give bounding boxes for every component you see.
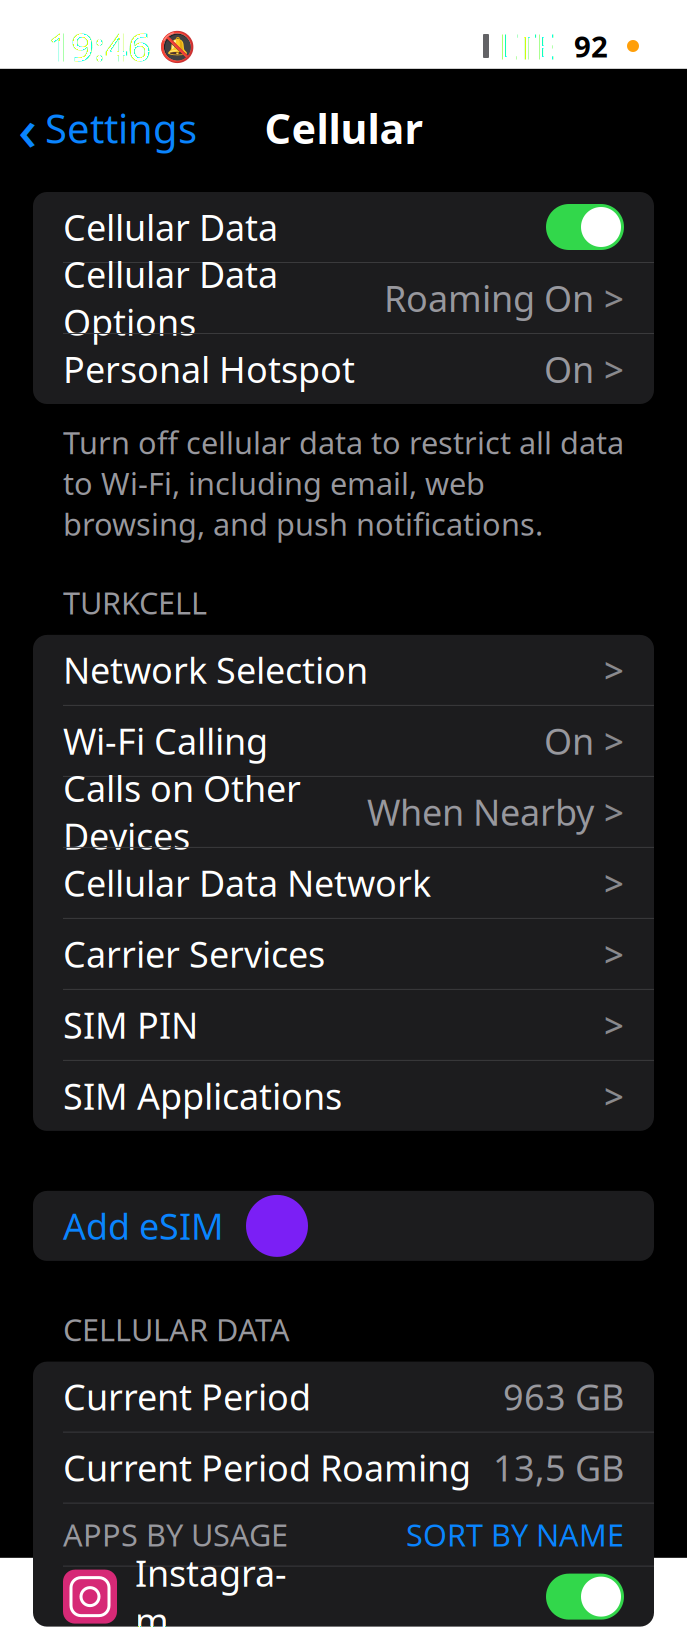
- button[interactable]: SIM PIN: [33, 990, 654, 1060]
- staticText: Personal Hotspot: [63, 345, 355, 393]
- button[interactable]: Wi-Fi Calling: [33, 706, 654, 776]
- staticText: ‹: [18, 89, 37, 167]
- button[interactable]: Cellular Data: [33, 192, 654, 262]
- button[interactable]: Network Selection: [33, 635, 654, 705]
- staticText: On: [544, 717, 594, 765]
- button[interactable]: Add eSIM: [33, 1191, 654, 1261]
- button[interactable]: Current Period Roaming: [33, 1433, 654, 1503]
- staticText: Current Period: [63, 1373, 311, 1420]
- button[interactable]: Cellular Data Network: [33, 848, 654, 918]
- staticText: Add eSIM: [63, 1202, 224, 1250]
- staticText: Network Selection: [63, 646, 368, 694]
- staticText: >: [604, 647, 624, 693]
- staticText: >: [604, 789, 624, 835]
- staticText: Turn off cellular data to restrict all d…: [63, 422, 624, 544]
- staticText: Cellular Data Network: [63, 859, 431, 907]
- staticText: LTE: [499, 23, 555, 69]
- staticText: Cellular Data Options: [63, 250, 278, 346]
- staticText: CELLULAR DATA: [63, 1309, 290, 1350]
- staticText: SIM Applications: [63, 1072, 342, 1120]
- staticText: Cellular: [264, 101, 422, 155]
- staticText: APPS BY USAGE: [63, 1514, 288, 1555]
- staticText: Cellular Data: [63, 203, 278, 251]
- staticText: SIM PIN: [63, 1001, 198, 1049]
- staticText: >: [604, 718, 624, 764]
- staticText: Current Period Roaming: [63, 1444, 471, 1491]
- button[interactable]: Current Period: [33, 1362, 654, 1432]
- staticText: Roaming On: [384, 274, 594, 322]
- staticText: Settings: [45, 101, 197, 154]
- button[interactable]: Cellular Data Options: [33, 263, 654, 333]
- button[interactable]: SIM Applications: [33, 1061, 654, 1131]
- button[interactable]: Carrier Services: [33, 919, 654, 989]
- staticText: 19:46: [48, 19, 151, 72]
- staticText: Instagram: [135, 1549, 287, 1627]
- staticText: >: [604, 275, 624, 321]
- staticText: >: [604, 1073, 624, 1119]
- staticText: Calls on Other Devices: [63, 764, 301, 860]
- button[interactable]: SORT BY NAME: [406, 1514, 624, 1555]
- staticText: Carrier Services: [63, 930, 325, 978]
- button[interactable]: Calls on Other Devices: [33, 777, 654, 847]
- staticText: 92: [574, 26, 608, 65]
- staticText: SORT BY NAME: [406, 1514, 624, 1555]
- staticText: Wi-Fi Calling: [63, 717, 268, 765]
- staticText: >: [604, 931, 624, 977]
- button[interactable]: ‹: [0, 100, 215, 156]
- staticText: >: [604, 346, 624, 392]
- staticText: 13,5 GB: [493, 1444, 624, 1491]
- staticText: 963 GB: [503, 1373, 624, 1420]
- staticText: TURKCELL: [63, 582, 207, 623]
- staticText: On: [544, 345, 594, 393]
- staticText: >: [604, 860, 624, 906]
- staticText: 🔕: [151, 26, 196, 65]
- staticText: When Nearby: [367, 788, 594, 836]
- staticText: >: [604, 1002, 624, 1048]
- button[interactable]: Personal Hotspot: [33, 334, 654, 404]
